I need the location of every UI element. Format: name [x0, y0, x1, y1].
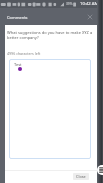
button[interactable]: Close dialog: [86, 13, 94, 21]
staticText: Test: [14, 62, 22, 67]
staticText: What suggestions do you have to make XYZ…: [7, 30, 95, 40]
button[interactable]: Close: [73, 173, 89, 180]
staticText: Comments: [7, 15, 28, 20]
staticText: Close: [76, 174, 86, 179]
staticText: 39%: [66, 2, 73, 6]
button[interactable]: Test: [9, 59, 91, 159]
button[interactable]: Menu: [97, 165, 103, 175]
staticText: 4996 characters left: [7, 51, 41, 56]
staticText: 10:42 AM: [80, 1, 99, 7]
